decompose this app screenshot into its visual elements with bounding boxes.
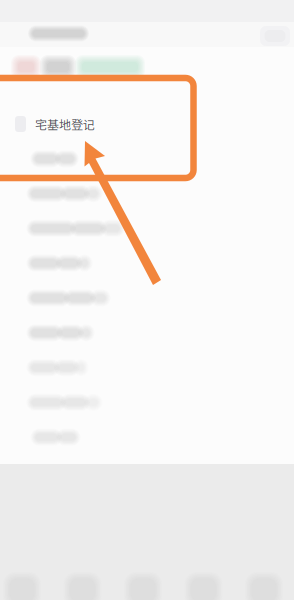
button[interactable]: 宅基地登记	[0, 107, 294, 141]
staticText: 宅基地登记	[35, 115, 95, 133]
button[interactable]: More	[258, 24, 292, 48]
